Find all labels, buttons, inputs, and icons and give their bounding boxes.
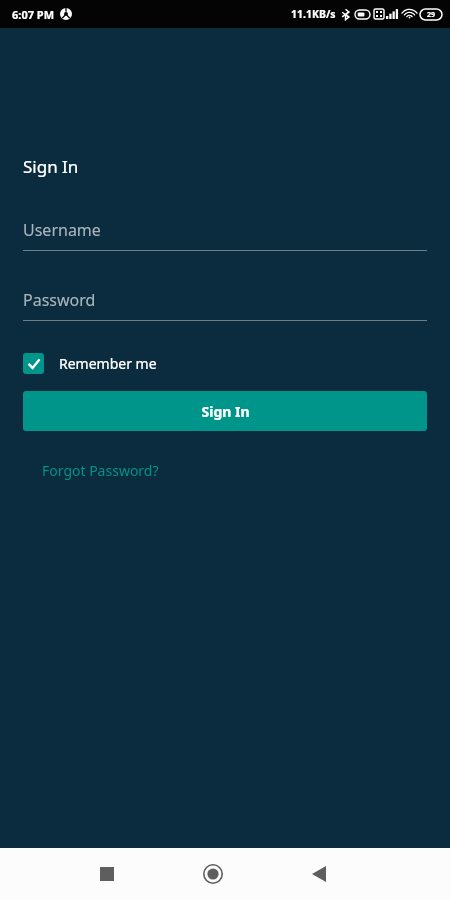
staticText: Sign In — [23, 155, 79, 178]
button[interactable]: Forgot Password? — [23, 459, 159, 482]
button[interactable]: Remember me — [23, 353, 157, 374]
staticText: 29 — [427, 10, 436, 20]
button[interactable]: Password — [23, 289, 427, 321]
staticText: 11.1KB/s — [291, 7, 336, 21]
staticText: Username — [23, 219, 101, 241]
staticText: Sign In — [201, 402, 250, 421]
button[interactable]: Back — [298, 853, 340, 895]
staticText: 6:07 PM — [12, 7, 55, 22]
button[interactable]: Sign In — [23, 391, 427, 431]
staticText: Password — [23, 289, 96, 311]
button[interactable]: Home — [192, 853, 234, 895]
staticText: Remember me — [59, 354, 157, 373]
staticText: Forgot Password? — [42, 461, 159, 480]
button[interactable]: Username — [23, 219, 427, 251]
button[interactable]: Recent apps — [86, 853, 128, 895]
